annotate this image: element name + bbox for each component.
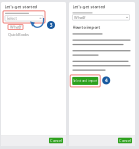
staticText: 3 <box>49 21 52 29</box>
button[interactable]: QuickBooks <box>8 32 29 37</box>
button[interactable]: WhatIf <box>8 24 23 29</box>
staticText: 4 <box>105 77 108 84</box>
staticText: How to import <box>72 25 100 30</box>
staticText: Let's get started <box>4 4 37 9</box>
staticText: QuickBooks <box>8 32 29 37</box>
button[interactable]: Select and import <box>70 75 100 87</box>
button[interactable]: Cancel <box>49 138 63 143</box>
staticText: Select <box>6 16 16 21</box>
staticText: Cancel <box>50 138 62 143</box>
staticText: Select and import <box>73 79 97 83</box>
staticText: Cancel <box>119 138 131 143</box>
staticText: Let's get started <box>72 4 105 9</box>
staticText: WhatIf <box>74 15 85 20</box>
button[interactable]: Cancel <box>118 138 132 143</box>
staticText: WhatIf <box>10 24 21 30</box>
